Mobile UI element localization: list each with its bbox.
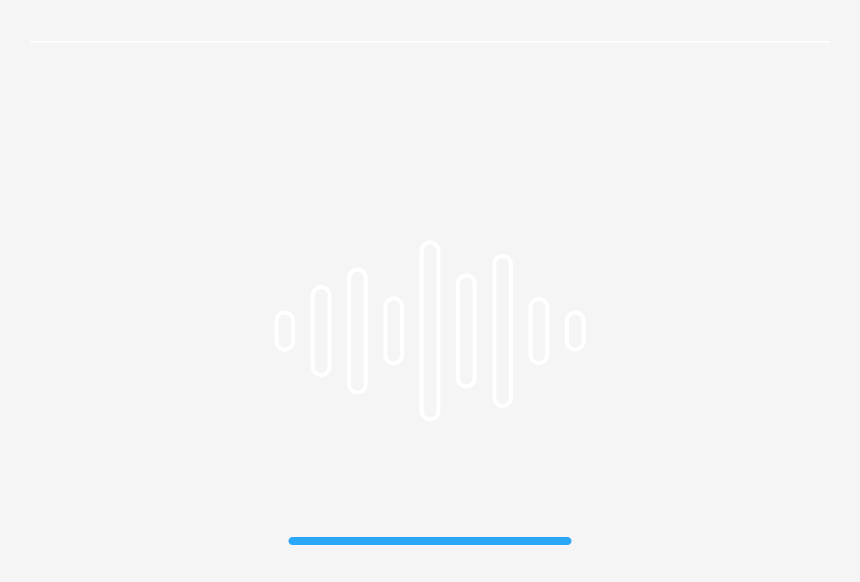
button[interactable]: Playback progress [288,537,571,582]
button[interactable]: Audio waveform [276,240,584,421]
